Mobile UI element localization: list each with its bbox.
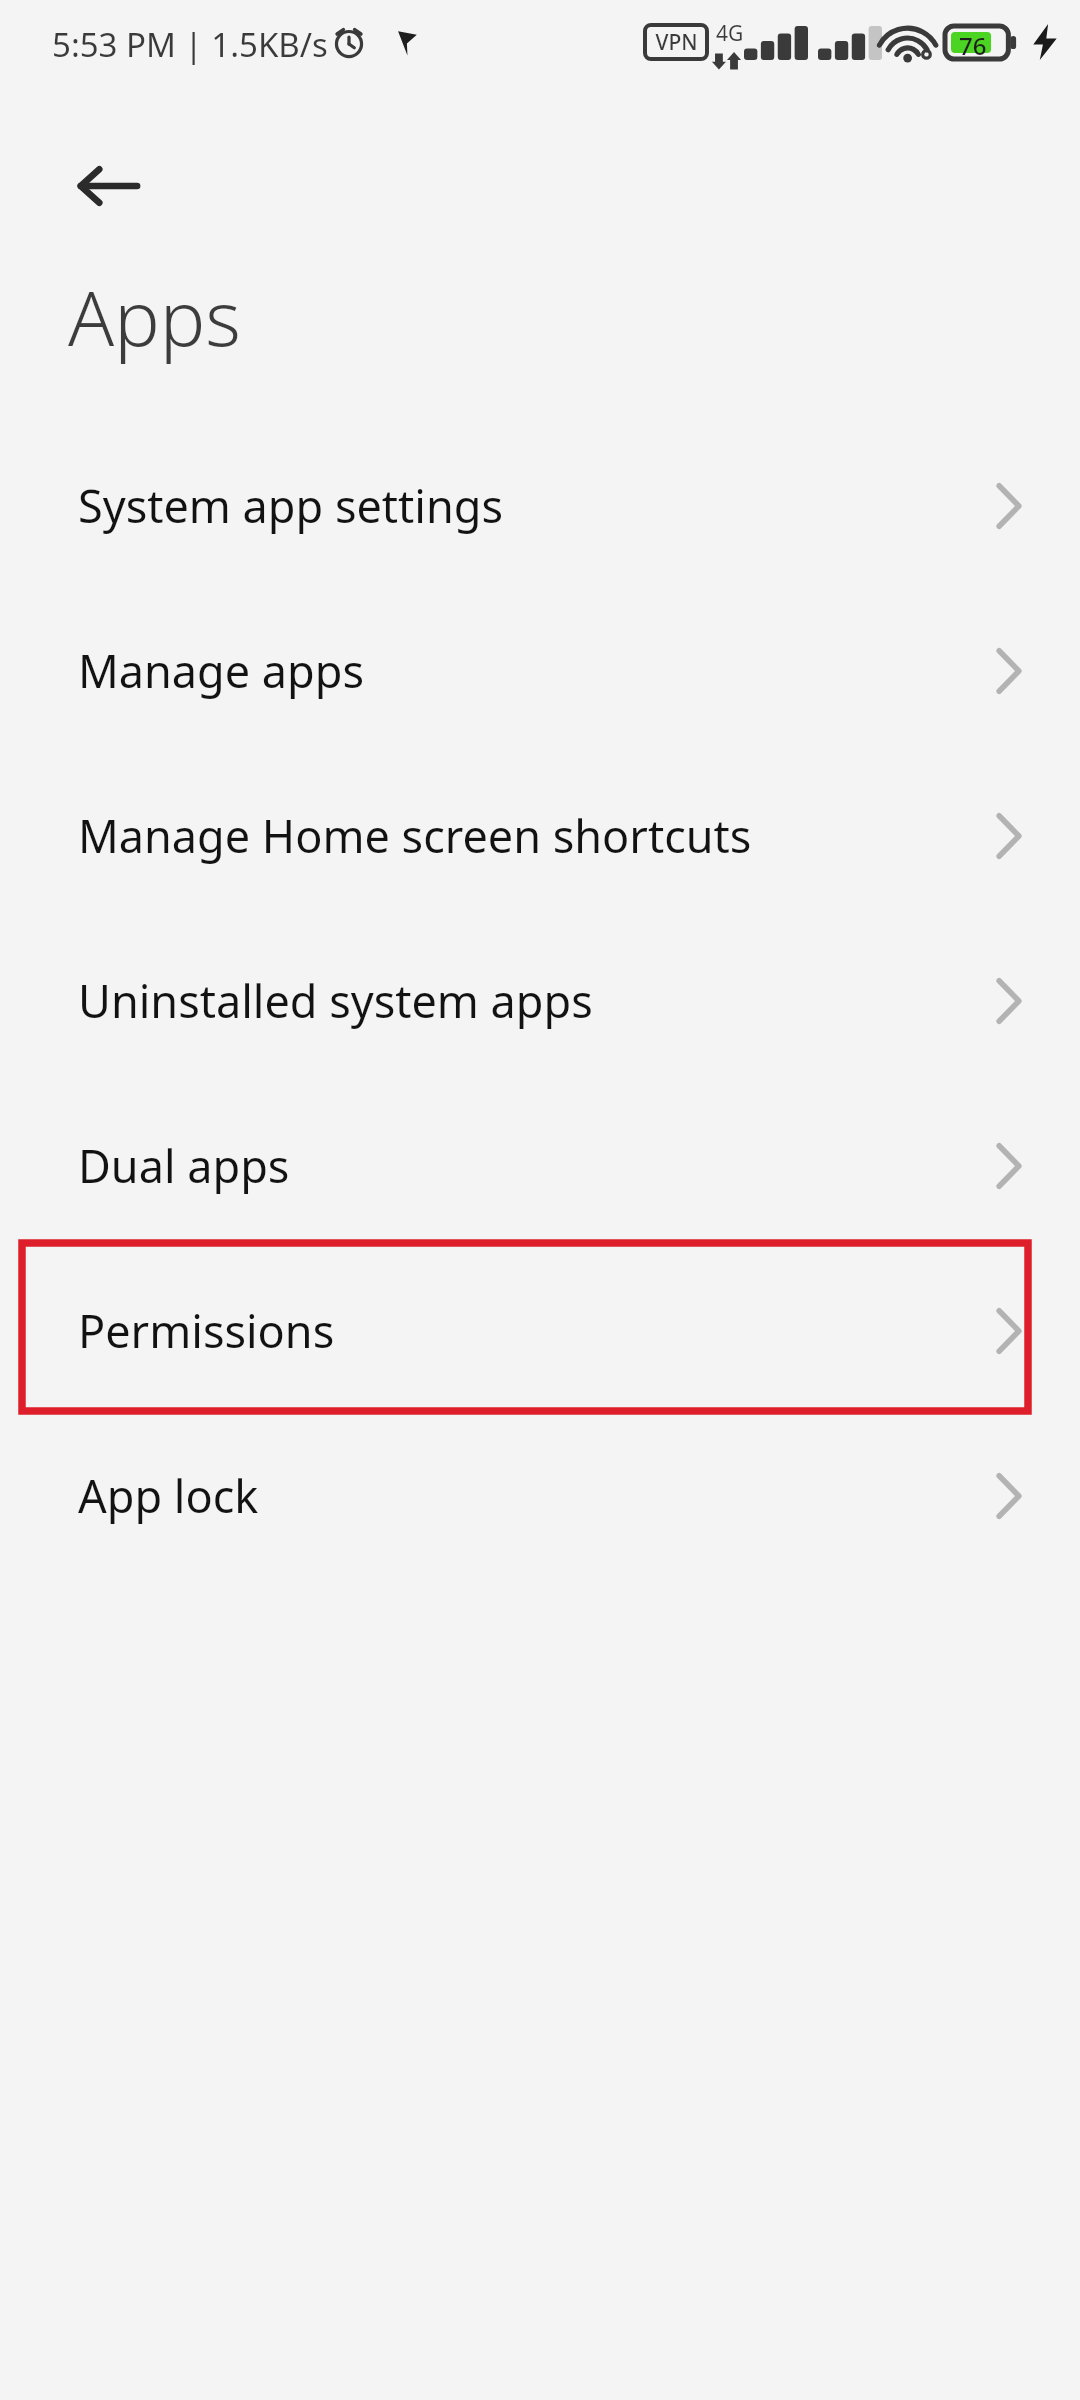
- staticText: System app settings: [78, 475, 503, 536]
- button[interactable]: Uninstalled system apps: [0, 918, 1080, 1083]
- button[interactable]: Manage Home screen shortcuts: [0, 753, 1080, 918]
- button[interactable]: Back: [52, 130, 164, 242]
- staticText: Permissions: [78, 1300, 335, 1361]
- staticText: 5:53 PM | 1.5KB/s: [52, 22, 328, 67]
- button[interactable]: Manage apps: [0, 588, 1080, 753]
- button[interactable]: App lock: [0, 1413, 1080, 1578]
- staticText: VPN: [655, 28, 698, 57]
- staticText: App lock: [78, 1465, 259, 1526]
- staticText: Manage Home screen shortcuts: [78, 805, 752, 866]
- staticText: Apps: [68, 265, 241, 369]
- staticText: 76: [959, 29, 987, 62]
- button[interactable]: Dual apps: [0, 1083, 1080, 1248]
- button[interactable]: Permissions: [0, 1248, 1080, 1413]
- staticText: 4G: [716, 19, 744, 48]
- staticText: Uninstalled system apps: [78, 970, 593, 1031]
- staticText: Dual apps: [78, 1135, 290, 1196]
- button[interactable]: System app settings: [0, 423, 1080, 588]
- staticText: Manage apps: [78, 640, 365, 701]
